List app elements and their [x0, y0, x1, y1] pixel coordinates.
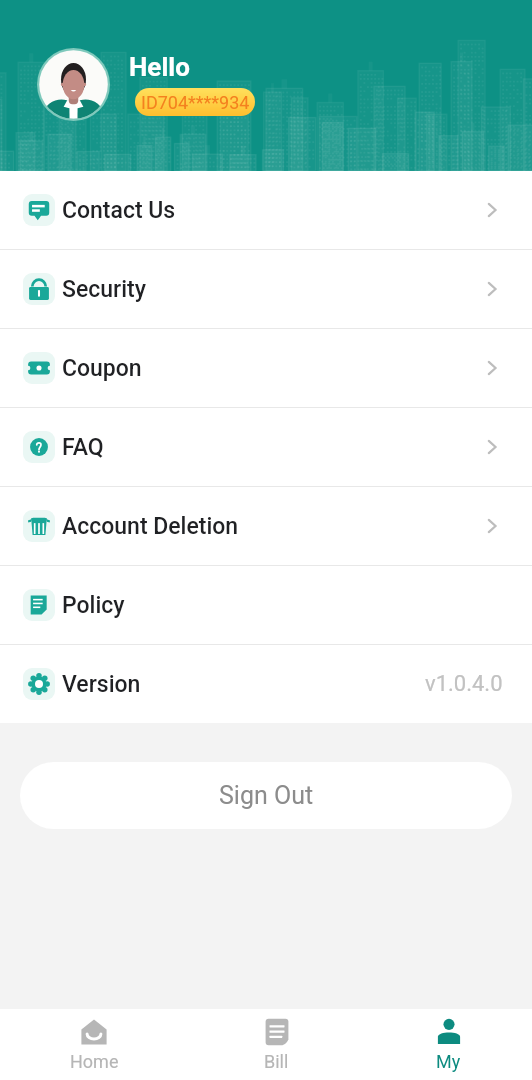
- staticText: Home: [70, 1051, 119, 1072]
- button[interactable]: Account Deletion: [0, 487, 532, 565]
- staticText: Version: [62, 671, 141, 698]
- staticText: Policy: [62, 592, 125, 619]
- staticText: My: [436, 1051, 461, 1072]
- staticText: ID704****934: [141, 92, 250, 113]
- button[interactable]: Home: [5, 1009, 183, 1080]
- button[interactable]: Policy: [0, 566, 532, 644]
- button[interactable]: Bill: [188, 1009, 365, 1080]
- button[interactable]: Security: [0, 250, 532, 328]
- staticText: Coupon: [62, 355, 142, 382]
- staticText: Hello: [129, 52, 190, 82]
- button[interactable]: Contact Us: [0, 171, 532, 249]
- staticText: Account Deletion: [62, 513, 239, 540]
- staticText: Security: [62, 276, 146, 303]
- staticText: FAQ: [62, 434, 104, 461]
- button[interactable]: Sign Out: [20, 762, 512, 829]
- button[interactable]: Version: [0, 645, 532, 723]
- button[interactable]: Coupon: [0, 329, 532, 407]
- staticText: Contact Us: [62, 197, 176, 224]
- button[interactable]: FAQ: [0, 408, 532, 486]
- button[interactable]: My: [360, 1009, 532, 1080]
- staticText: v1.0.4.0: [425, 671, 503, 697]
- staticText: Sign Out: [219, 781, 314, 810]
- staticText: Bill: [264, 1051, 289, 1072]
